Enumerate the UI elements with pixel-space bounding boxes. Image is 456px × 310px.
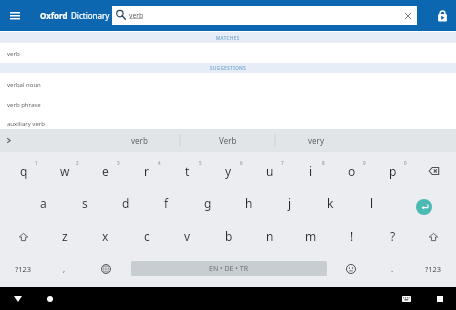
staticText: m (305, 228, 317, 244)
staticText: Verb (219, 135, 237, 146)
staticText: d (122, 195, 130, 211)
staticText: w (60, 163, 70, 179)
button[interactable]: o (331, 155, 372, 186)
staticText: very (308, 135, 324, 146)
button[interactable]: verb (0, 43, 456, 64)
button[interactable]: , (44, 253, 85, 284)
button[interactable]: u (249, 155, 290, 186)
staticText: 1 (35, 160, 38, 166)
button[interactable]: y (208, 155, 249, 186)
staticText: Dictionary (71, 10, 110, 21)
button[interactable]: p (372, 155, 413, 186)
staticText: t (185, 163, 190, 179)
staticText: ?123 (15, 264, 32, 274)
staticText: s (82, 195, 88, 211)
staticText: 0 (404, 160, 407, 166)
staticText: l (370, 195, 374, 211)
staticText: 7 (281, 160, 284, 166)
button[interactable]: Enter (403, 191, 444, 222)
button[interactable]: l (351, 187, 392, 218)
staticText: y (225, 163, 232, 179)
staticText: ! (350, 228, 354, 244)
staticText: , (63, 263, 66, 274)
button[interactable]: Symbols (3, 253, 44, 284)
button[interactable]: e (85, 155, 126, 186)
staticText: p (389, 163, 397, 179)
button[interactable]: Clear search (400, 8, 416, 24)
button[interactable]: Emoji (330, 253, 371, 284)
button[interactable]: Switch keyboard (395, 289, 418, 309)
staticText: c (144, 228, 150, 244)
button[interactable]: Symbols (413, 253, 454, 284)
button[interactable]: d (105, 187, 146, 218)
staticText: e (102, 163, 109, 179)
button[interactable]: verb phrase (0, 94, 456, 115)
staticText: . (391, 263, 394, 274)
staticText: i (309, 163, 313, 179)
staticText: 4 (158, 160, 161, 166)
button[interactable]: Shift (3, 221, 44, 252)
staticText: verb (131, 135, 148, 146)
button[interactable]: a (23, 187, 64, 218)
staticText: z (62, 228, 68, 244)
staticText: j (288, 195, 292, 211)
button[interactable]: Recent apps (428, 289, 451, 309)
button[interactable]: Shift (413, 221, 454, 252)
button[interactable]: z (44, 220, 85, 251)
staticText: 6 (240, 160, 243, 166)
staticText: x (102, 228, 109, 244)
staticText: 5 (199, 160, 202, 166)
button[interactable]: Backspace (413, 155, 454, 186)
button[interactable]: auxiliary verb (0, 115, 456, 130)
button[interactable]: Verb (183, 129, 273, 152)
button[interactable]: Change language (85, 253, 126, 284)
staticText: 9 (363, 160, 366, 166)
button[interactable]: j (269, 187, 310, 218)
button[interactable]: verb (112, 6, 417, 25)
button[interactable]: c (126, 220, 167, 251)
button[interactable]: Home (38, 289, 61, 309)
staticText: o (348, 163, 356, 179)
button[interactable]: r (126, 155, 167, 186)
button[interactable]: verbal noun (0, 74, 456, 95)
button[interactable]: s (64, 187, 105, 218)
staticText: SUGGESTIONS (210, 65, 247, 71)
staticText: f (164, 195, 169, 211)
staticText: verb (7, 50, 20, 58)
button[interactable]: n (249, 220, 290, 251)
button[interactable]: g (187, 187, 228, 218)
button[interactable]: ? (372, 220, 413, 251)
staticText: b (225, 228, 233, 244)
staticText: verb phrase (7, 101, 41, 109)
button[interactable]: v (167, 220, 208, 251)
button[interactable]: Open Play Store (429, 0, 456, 31)
button[interactable]: ! (331, 220, 372, 251)
button[interactable]: w (44, 155, 85, 186)
staticText: q (20, 163, 28, 179)
staticText: verbal noun (7, 81, 41, 89)
button[interactable]: m (290, 220, 331, 251)
button[interactable]: x (85, 220, 126, 251)
button[interactable]: Space (131, 261, 327, 276)
button[interactable]: t (167, 155, 208, 186)
button[interactable]: f (146, 187, 187, 218)
staticText: 2 (76, 160, 79, 166)
button[interactable]: Open navigation menu (0, 0, 30, 31)
button[interactable]: verb (94, 129, 184, 152)
button[interactable]: i (290, 155, 331, 186)
button[interactable]: k (310, 187, 351, 218)
staticText: auxiliary verb (7, 120, 45, 128)
button[interactable]: Hide keyboard (6, 289, 29, 309)
staticText: a (40, 195, 47, 211)
staticText: h (245, 195, 253, 211)
staticText: verb (129, 11, 144, 20)
button[interactable]: very (271, 129, 361, 152)
button[interactable]: q (3, 155, 44, 186)
staticText: EN • DE • TR (209, 264, 249, 274)
staticText: 3 (117, 160, 120, 166)
button[interactable]: h (228, 187, 269, 218)
button[interactable]: b (208, 220, 249, 251)
staticText: ? (390, 228, 396, 244)
button[interactable]: More suggestions (0, 129, 16, 152)
